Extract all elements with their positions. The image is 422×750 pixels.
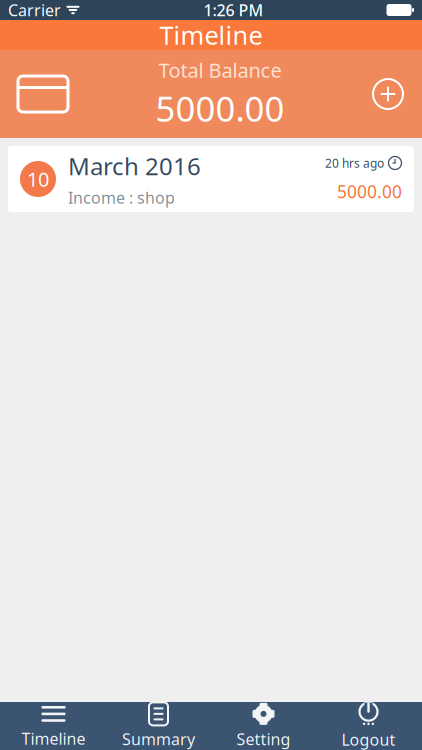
staticText: 20 hrs ago: [325, 155, 384, 171]
staticText: 1:26 PM: [203, 0, 263, 21]
button[interactable]: Setting: [211, 702, 316, 750]
button[interactable]: Summary: [106, 702, 211, 750]
button[interactable]: Add transaction: [364, 72, 412, 116]
staticText: 5000.00: [337, 180, 402, 203]
staticText: Timeline: [21, 728, 85, 749]
staticText: Summary: [122, 728, 195, 750]
button[interactable]: Timeline: [1, 702, 106, 750]
button[interactable]: Logout: [316, 702, 421, 750]
staticText: Total Balance: [158, 57, 281, 83]
staticText: Carrier: [8, 0, 61, 21]
staticText: Timeline: [159, 18, 262, 52]
staticText: Logout: [341, 729, 395, 750]
button[interactable]: 10: [8, 146, 414, 212]
button[interactable]: Accounts: [10, 70, 76, 118]
staticText: 10: [27, 166, 49, 192]
staticText: Income : shop: [68, 187, 175, 208]
staticText: 5000.00: [155, 85, 284, 131]
staticText: March 2016: [68, 150, 201, 182]
staticText: Setting: [236, 728, 290, 750]
